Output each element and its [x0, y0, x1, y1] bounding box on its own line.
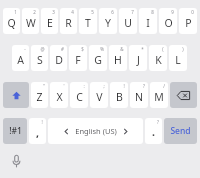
staticText: 5	[91, 9, 94, 15]
button[interactable]: 4	[60, 8, 77, 34]
staticText: F	[75, 53, 81, 67]
button[interactable]: Backspace	[170, 82, 197, 108]
button[interactable]: 5	[79, 8, 97, 34]
staticText: '	[63, 83, 65, 89]
staticText: !	[41, 119, 43, 125]
staticText: Q	[7, 16, 16, 30]
staticText: (	[162, 46, 164, 52]
staticText: R	[65, 16, 72, 30]
staticText: E	[47, 16, 53, 30]
staticText: N	[135, 90, 143, 104]
staticText: G	[94, 53, 102, 67]
button[interactable]: ;	[90, 82, 108, 108]
staticText: W	[26, 16, 36, 30]
staticText: /	[163, 83, 165, 89]
button[interactable]: /	[150, 82, 168, 108]
button[interactable]: 6	[99, 8, 117, 34]
staticText: 0	[191, 9, 194, 15]
button[interactable]: English (US)	[48, 118, 143, 144]
staticText: K	[155, 53, 162, 67]
button[interactable]: &	[109, 45, 127, 71]
button[interactable]: Voice input	[6, 151, 26, 171]
button[interactable]: !	[110, 82, 128, 108]
staticText: ,	[36, 126, 39, 140]
button[interactable]: 3	[41, 8, 58, 34]
staticText: T	[85, 16, 91, 30]
staticText: D	[55, 53, 63, 67]
button[interactable]: (	[149, 45, 167, 71]
button[interactable]: $	[69, 45, 87, 71]
button[interactable]: "	[31, 82, 48, 108]
staticText: "	[43, 83, 45, 89]
button[interactable]: Shift	[3, 82, 29, 108]
staticText: J	[137, 53, 140, 67]
button[interactable]: @	[31, 45, 48, 71]
staticText: V	[96, 90, 103, 104]
staticText: M	[154, 90, 164, 104]
staticText: A	[17, 53, 24, 67]
staticText: %	[100, 46, 104, 52]
button[interactable]: ?	[130, 82, 148, 108]
staticText: L	[175, 53, 181, 67]
staticText: X	[56, 90, 63, 104]
staticText: P	[185, 16, 192, 30]
staticText: B	[116, 90, 123, 104]
staticText: C	[76, 90, 83, 104]
staticText: .	[152, 125, 155, 139]
button[interactable]: !	[29, 118, 46, 144]
staticText: Z	[36, 90, 43, 104]
staticText: !	[123, 83, 125, 89]
staticText: U	[124, 16, 132, 30]
staticText: 7	[131, 9, 134, 15]
staticText: *	[141, 46, 144, 52]
staticText: -	[24, 46, 26, 52]
staticText: $	[81, 46, 84, 52]
staticText: 1	[14, 9, 17, 15]
button[interactable]: :	[70, 82, 88, 108]
staticText: S	[37, 53, 43, 67]
staticText: ;	[103, 83, 105, 89]
button[interactable]: *	[129, 45, 147, 71]
staticText: :	[83, 83, 85, 89]
staticText: @	[40, 46, 45, 52]
staticText: !#1	[9, 125, 22, 137]
staticText: #	[61, 46, 64, 52]
staticText: )	[182, 46, 184, 52]
staticText: ?	[143, 83, 145, 89]
staticText: 6	[111, 9, 114, 15]
staticText: 3	[52, 9, 55, 15]
staticText: 4	[71, 9, 74, 15]
button[interactable]: 9	[159, 8, 177, 34]
button[interactable]: 0	[179, 8, 197, 34]
staticText: English (US)	[75, 126, 117, 136]
button[interactable]: )	[169, 45, 187, 71]
staticText: 2	[33, 9, 36, 15]
button[interactable]: Send	[164, 118, 197, 144]
staticText: &	[120, 46, 124, 52]
button[interactable]: 1	[3, 8, 20, 34]
staticText: I	[146, 16, 150, 30]
staticText: 9	[171, 9, 174, 15]
button[interactable]: %	[89, 45, 107, 71]
staticText: ?	[157, 119, 159, 125]
button[interactable]: #	[50, 45, 67, 71]
button[interactable]: -	[12, 45, 29, 71]
staticText: Send	[170, 125, 191, 137]
button[interactable]: 8	[139, 8, 157, 34]
button[interactable]: !#1	[3, 118, 27, 144]
button[interactable]: 2	[22, 8, 39, 34]
button[interactable]: ?	[145, 118, 162, 144]
staticText: H	[114, 53, 122, 67]
staticText: 8	[151, 9, 154, 15]
button[interactable]: '	[50, 82, 68, 108]
button[interactable]: 7	[119, 8, 137, 34]
staticText: Y	[105, 16, 111, 30]
staticText: O	[164, 16, 173, 30]
